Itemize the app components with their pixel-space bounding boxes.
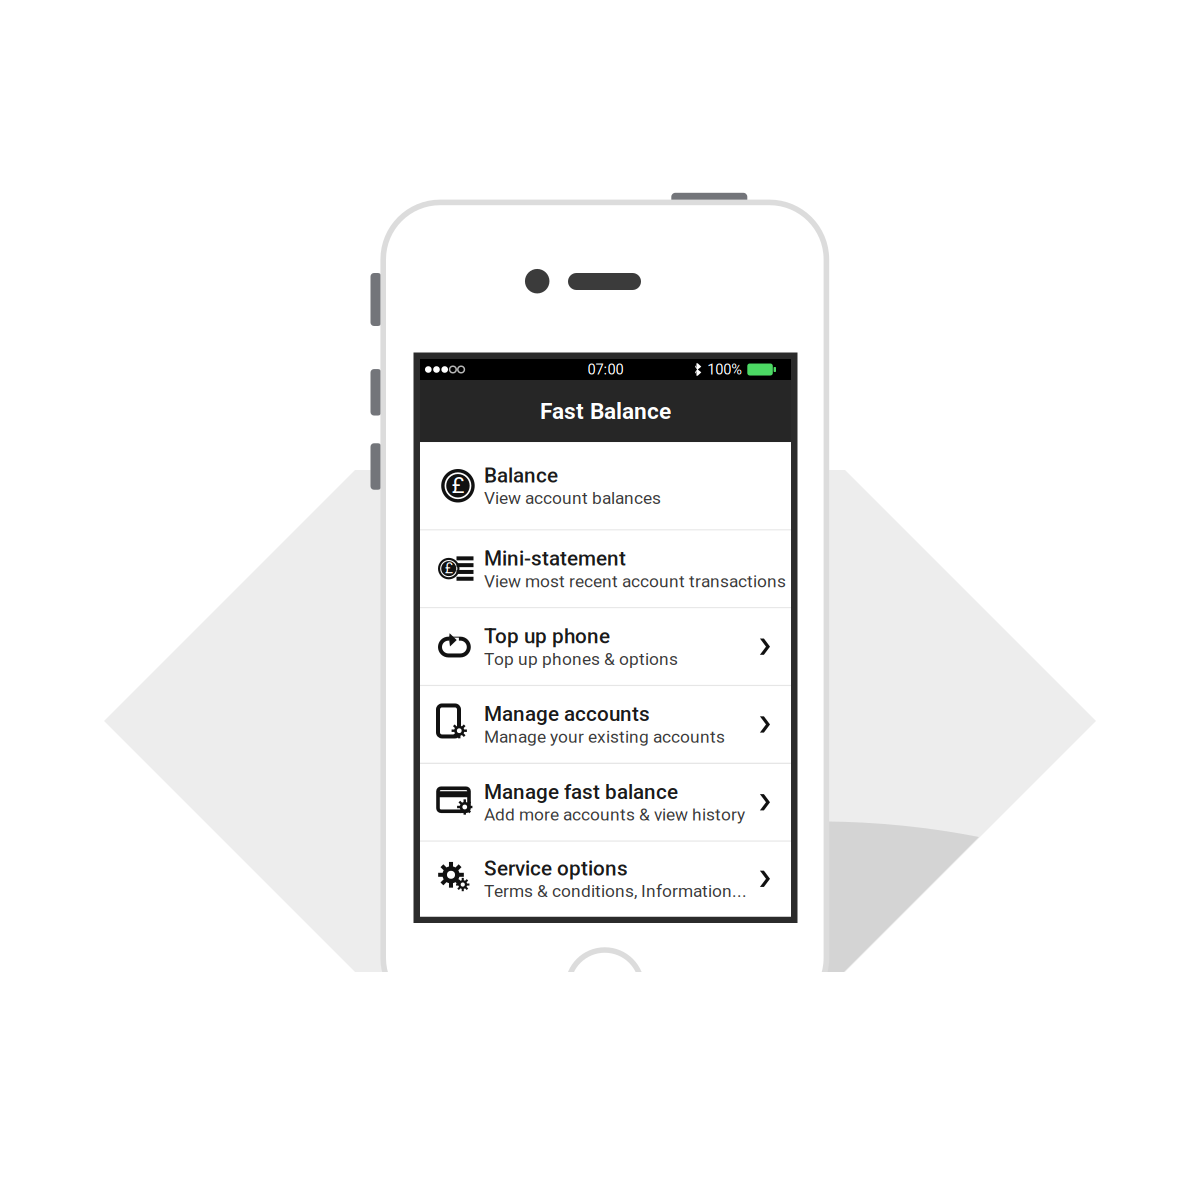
staticText: £ (445, 560, 453, 577)
staticText: Manage fast balance (484, 780, 678, 804)
staticText: Terms & conditions, Information... (484, 881, 747, 901)
staticText: Top up phone (484, 624, 610, 648)
staticText: 100% (707, 361, 742, 378)
staticText: View account balances (484, 488, 661, 508)
staticText: 07:00 (587, 361, 623, 378)
button[interactable]: £ (420, 442, 791, 529)
staticText: Mini-statement (484, 546, 626, 570)
button[interactable]: Manage accounts (420, 686, 791, 763)
button[interactable]: £ (420, 531, 791, 607)
staticText: View most recent account transactions (484, 571, 786, 591)
staticText: Balance (484, 463, 558, 487)
button[interactable]: Manage fast balance (420, 764, 791, 840)
staticText: Add more accounts & view history (484, 804, 745, 825)
staticText: Top up phones & options (484, 649, 678, 669)
button[interactable]: Service options (420, 842, 791, 916)
button[interactable]: Top up phone (420, 608, 791, 685)
staticText: Manage your existing accounts (484, 727, 725, 747)
staticText: £ (451, 472, 464, 498)
staticText: Fast Balance (540, 398, 671, 424)
staticText: Manage accounts (484, 702, 650, 726)
staticText: Service options (484, 856, 628, 880)
